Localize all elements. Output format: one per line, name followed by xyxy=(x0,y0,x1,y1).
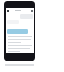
button[interactable] xyxy=(7,29,28,34)
